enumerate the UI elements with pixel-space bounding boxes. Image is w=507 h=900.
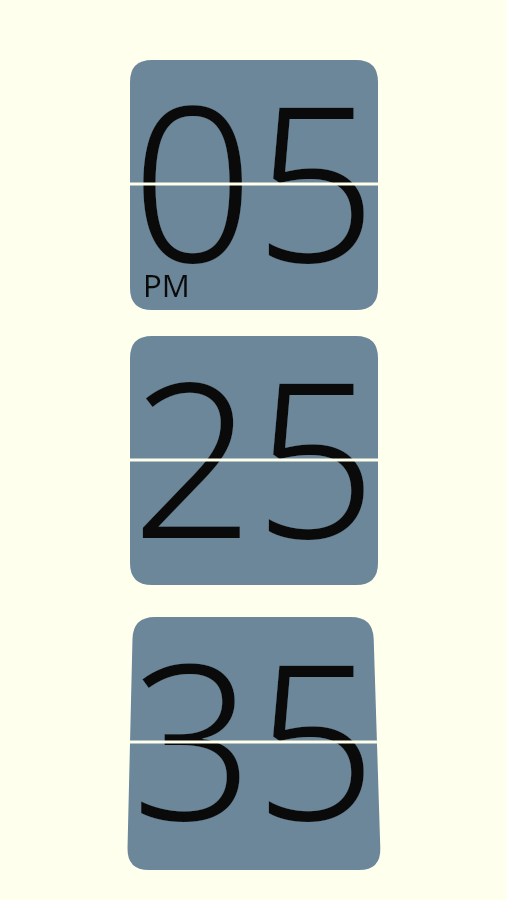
button[interactable]: Flip clock showing 05:25:35 PM — [0, 0, 507, 900]
